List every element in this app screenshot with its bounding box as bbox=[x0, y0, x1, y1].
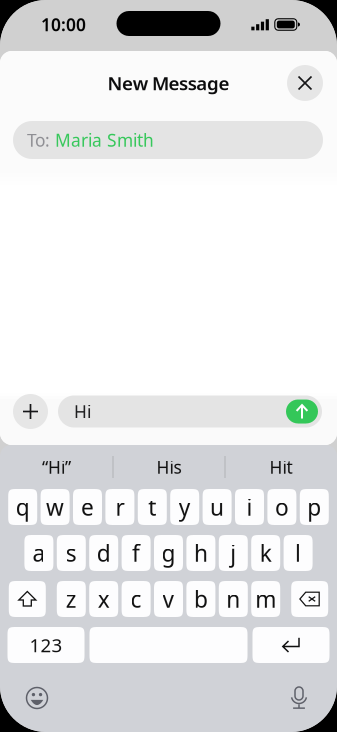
button[interactable]: 123 bbox=[7, 627, 84, 663]
staticText: New Message bbox=[107, 71, 229, 95]
button[interactable]: y bbox=[170, 489, 199, 525]
staticText: e bbox=[81, 492, 94, 522]
staticText: b bbox=[194, 584, 208, 614]
staticText: Maria Smith bbox=[55, 128, 154, 151]
button[interactable]: k bbox=[251, 535, 280, 571]
button[interactable]: c bbox=[122, 581, 151, 617]
button[interactable]: e bbox=[73, 489, 102, 525]
button[interactable]: m bbox=[251, 581, 280, 617]
button[interactable]: g bbox=[154, 535, 183, 571]
staticText: h bbox=[194, 538, 208, 568]
button[interactable]: Close bbox=[287, 65, 323, 101]
staticText: v bbox=[162, 584, 174, 614]
staticText: r bbox=[115, 492, 124, 522]
staticText: i bbox=[246, 492, 252, 522]
button[interactable]: v bbox=[154, 581, 183, 617]
button[interactable]: Add attachment bbox=[13, 394, 48, 429]
button[interactable]: z bbox=[57, 581, 86, 617]
staticText: y bbox=[179, 492, 191, 522]
button[interactable]: q bbox=[8, 489, 37, 525]
button[interactable]: r bbox=[105, 489, 134, 525]
button[interactable]: To: bbox=[13, 121, 323, 159]
button[interactable]: u bbox=[203, 489, 232, 525]
staticText: “Hi” bbox=[42, 455, 71, 478]
staticText: Hi bbox=[74, 400, 91, 423]
button[interactable]: His bbox=[113, 445, 224, 489]
button[interactable]: f bbox=[122, 535, 151, 571]
staticText: q bbox=[16, 492, 30, 522]
staticText: c bbox=[131, 584, 142, 614]
staticText: n bbox=[226, 584, 240, 614]
button[interactable]: b bbox=[186, 581, 215, 617]
button[interactable]: Send bbox=[286, 399, 318, 423]
staticText: To: bbox=[27, 128, 55, 151]
staticText: w bbox=[46, 492, 64, 522]
staticText: l bbox=[295, 538, 301, 568]
staticText: u bbox=[210, 492, 224, 522]
button[interactable]: Return bbox=[252, 627, 329, 663]
button[interactable]: n bbox=[219, 581, 248, 617]
button[interactable]: Emoji keyboard bbox=[15, 678, 59, 718]
staticText: d bbox=[97, 538, 111, 568]
button[interactable]: Hit bbox=[225, 445, 336, 489]
button[interactable]: Dictation bbox=[277, 678, 321, 718]
button[interactable]: Shift bbox=[9, 581, 46, 617]
staticText: His bbox=[156, 455, 181, 478]
button[interactable]: p bbox=[300, 489, 329, 525]
staticText: x bbox=[98, 584, 110, 614]
button[interactable]: h bbox=[186, 535, 215, 571]
button[interactable]: w bbox=[41, 489, 70, 525]
button[interactable]: j bbox=[219, 535, 248, 571]
staticText: j bbox=[230, 538, 236, 568]
staticText: m bbox=[255, 584, 276, 614]
staticText: p bbox=[307, 492, 321, 522]
staticText: k bbox=[260, 538, 272, 568]
button[interactable]: t bbox=[138, 489, 167, 525]
staticText: o bbox=[275, 492, 289, 522]
staticText: f bbox=[132, 538, 140, 568]
button[interactable]: o bbox=[267, 489, 296, 525]
staticText: 10:00 bbox=[41, 13, 86, 36]
button[interactable]: Space bbox=[89, 627, 247, 663]
button[interactable]: “Hi” bbox=[0, 445, 112, 489]
staticText: Hit bbox=[269, 455, 292, 478]
button[interactable]: s bbox=[57, 535, 86, 571]
button[interactable]: x bbox=[89, 581, 118, 617]
staticText: a bbox=[32, 538, 45, 568]
staticText: g bbox=[161, 538, 175, 568]
button[interactable]: l bbox=[284, 535, 313, 571]
staticText: z bbox=[66, 584, 77, 614]
staticText: t bbox=[148, 492, 156, 522]
button[interactable]: d bbox=[89, 535, 118, 571]
button[interactable]: i bbox=[235, 489, 264, 525]
staticText: s bbox=[66, 538, 77, 568]
button[interactable]: a bbox=[24, 535, 53, 571]
staticText: 123 bbox=[29, 633, 62, 657]
button[interactable]: Delete bbox=[291, 581, 328, 617]
